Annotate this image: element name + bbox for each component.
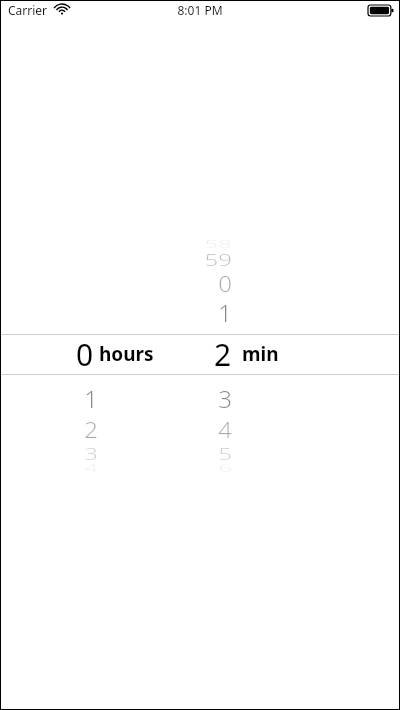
staticText: 4	[84, 461, 98, 475]
staticText: Carrier	[8, 2, 48, 18]
staticText: 8:01 PM	[177, 2, 223, 18]
staticText: 6	[218, 461, 232, 475]
staticText: 58	[204, 236, 232, 250]
staticText: hours	[99, 341, 154, 367]
staticText: 0	[218, 269, 232, 297]
button[interactable]: 2	[180, 334, 340, 374]
staticText: 59	[204, 247, 232, 270]
staticText: 1	[218, 296, 232, 328]
staticText: 2	[214, 334, 232, 374]
staticText: 4	[218, 414, 232, 444]
staticText: 2	[84, 414, 98, 444]
staticText: 3	[84, 442, 98, 464]
staticText: 5	[218, 442, 232, 464]
staticText: 0	[76, 334, 94, 374]
staticText: 3	[218, 382, 232, 414]
staticText: 1	[84, 382, 98, 414]
button[interactable]: 0	[0, 334, 200, 374]
staticText: min	[242, 341, 279, 367]
